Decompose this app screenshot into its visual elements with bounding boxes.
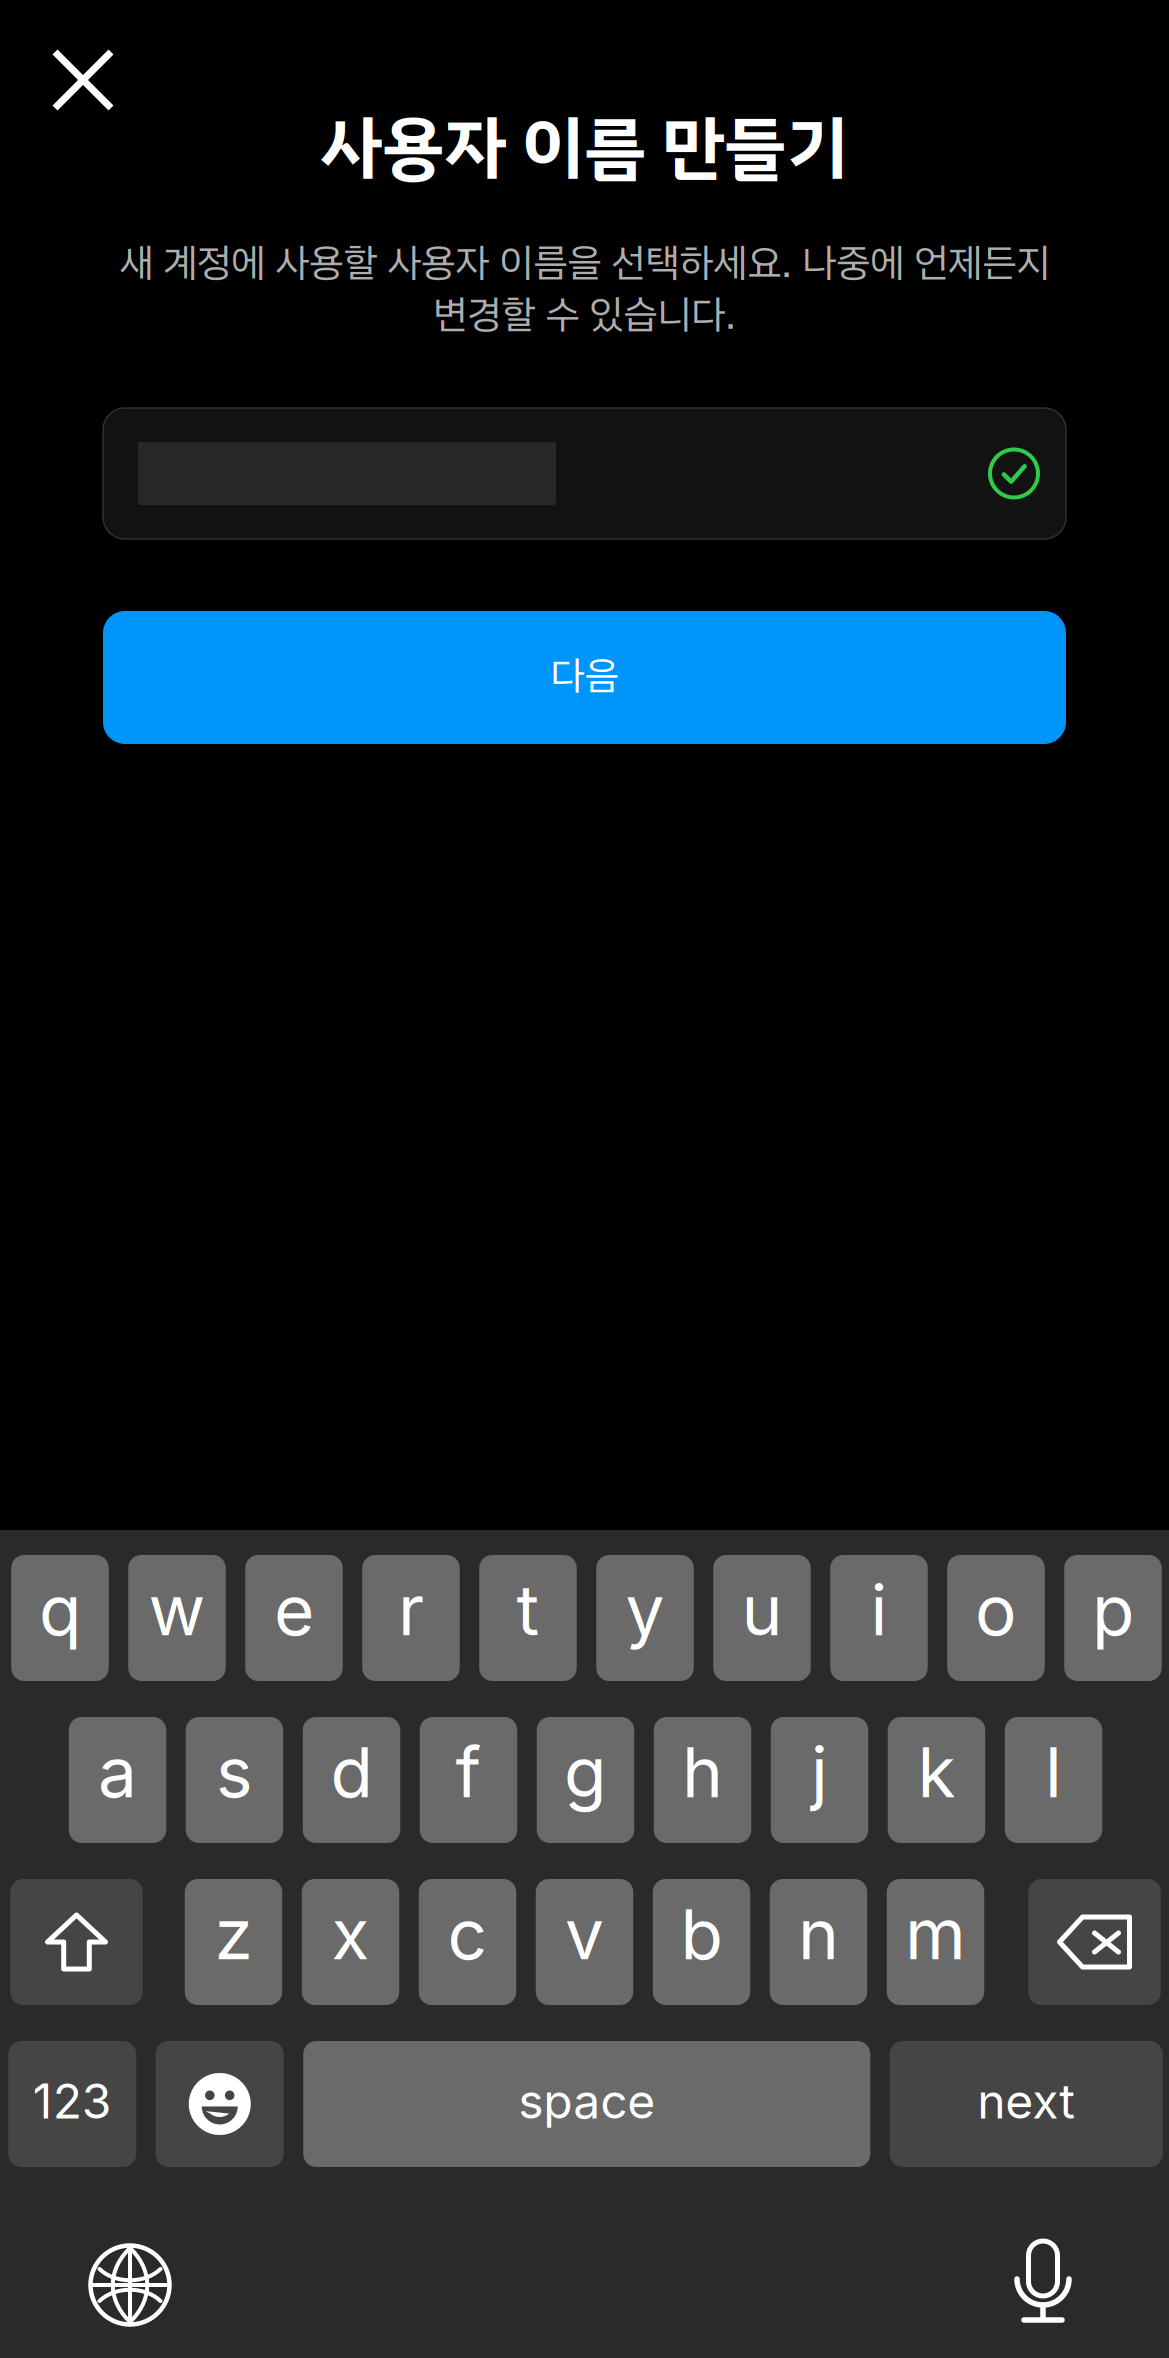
button[interactable]: p [1064,1555,1162,1681]
button[interactable]: space [303,2041,870,2167]
button[interactable]: j [771,1717,868,1843]
staticText: i [870,1568,887,1652]
button[interactable]: n [770,1879,867,2005]
button[interactable]: x [302,1879,399,2005]
staticText: q [39,1568,81,1652]
button[interactable]: w [128,1555,226,1681]
staticText: g [564,1730,607,1814]
staticText: o [975,1568,1017,1652]
button[interactable]: k [888,1717,985,1843]
button[interactable]: Dictation [999,2229,1111,2341]
button[interactable]: z [185,1879,282,2005]
staticText: r [398,1568,424,1652]
button[interactable]: Next keyboard [74,2229,186,2341]
button[interactable]: Shift [10,1879,143,2005]
button[interactable]: h [654,1717,751,1843]
button[interactable]: q [11,1555,109,1681]
staticText: e [274,1568,314,1652]
button[interactable]: g [537,1717,634,1843]
staticText: k [917,1730,955,1814]
button[interactable]: s [186,1717,283,1843]
staticText: j [811,1730,828,1814]
staticText: space [518,2072,655,2130]
staticText: 사용자 이름 만들기 [320,96,848,200]
button[interactable]: m [887,1879,984,2005]
staticText: h [682,1730,723,1814]
button[interactable]: 다음 [103,611,1066,744]
button[interactable]: b [653,1879,750,2005]
staticText: l [1045,1730,1062,1814]
button[interactable]: Delete [1028,1879,1161,2005]
button[interactable]: next [890,2041,1163,2167]
staticText: z [214,1892,252,1976]
button[interactable]: c [419,1879,516,2005]
staticText: c [447,1892,487,1976]
staticText: d [330,1730,372,1814]
staticText: n [798,1892,839,1976]
staticText: w [148,1568,205,1652]
button[interactable]: i [830,1555,928,1681]
button[interactable]: 123 [8,2041,136,2167]
button[interactable]: a [69,1717,166,1843]
staticText: t [516,1568,539,1652]
button[interactable]: Close [27,24,139,136]
button[interactable]: u [713,1555,811,1681]
button[interactable]: y [596,1555,694,1681]
staticText: next [977,2072,1075,2130]
button[interactable]: o [947,1555,1045,1681]
button[interactable]: d [303,1717,400,1843]
staticText: u [741,1568,782,1652]
staticText: v [565,1892,604,1976]
button[interactable]: t [479,1555,577,1681]
staticText: a [98,1730,137,1814]
staticText: x [331,1892,369,1976]
button[interactable]: r [362,1555,460,1681]
staticText: 다음 [550,652,618,699]
button[interactable]: l [1005,1717,1102,1843]
staticText: m [905,1892,966,1976]
button[interactable]: v [536,1879,633,2005]
staticText: s [216,1730,253,1814]
staticText: b [680,1892,722,1976]
staticText: 새 계정에 사용할 사용자 이름을 선택하세요. 나중에 언제든지 변경할 수 … [119,239,1050,338]
button[interactable]: Emoji [156,2041,284,2167]
staticText: f [455,1730,481,1814]
button[interactable]: e [245,1555,343,1681]
staticText: y [625,1568,664,1652]
staticText: p [1092,1568,1134,1652]
staticText: 123 [33,2072,112,2130]
button[interactable]: f [420,1717,517,1843]
